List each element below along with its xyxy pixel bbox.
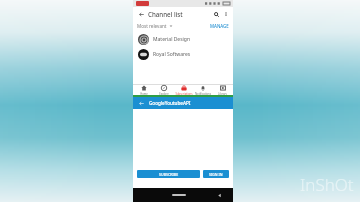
button[interactable]: SIGN IN bbox=[203, 170, 229, 178]
button[interactable]: Home bbox=[134, 85, 153, 95]
button[interactable]: Back bbox=[136, 9, 146, 19]
button[interactable]: Royal Softwares bbox=[133, 47, 233, 62]
staticText: Library bbox=[218, 92, 227, 95]
button[interactable]: Navigate up bbox=[137, 99, 146, 108]
staticText: GoogleYoutubeAPI bbox=[149, 100, 191, 106]
button[interactable]: Explore bbox=[154, 85, 173, 95]
staticText: Home bbox=[140, 92, 148, 95]
button[interactable]: More options bbox=[221, 9, 230, 18]
button[interactable]: Most relevant bbox=[137, 23, 173, 29]
button[interactable]: Subscriptions bbox=[174, 85, 193, 95]
staticText: Notifications bbox=[195, 92, 211, 95]
button[interactable]: Search bbox=[211, 9, 221, 19]
staticText: Royal Softwares bbox=[153, 51, 191, 58]
button[interactable]: SUBSCRIBE bbox=[137, 170, 200, 178]
button[interactable]: Back bbox=[216, 192, 223, 199]
button[interactable]: Notifications bbox=[193, 85, 212, 95]
staticText: SIGN IN bbox=[209, 172, 223, 177]
button[interactable]: MANAGE bbox=[210, 23, 229, 29]
button[interactable]: Home bbox=[172, 194, 186, 196]
staticText: Material Design bbox=[153, 36, 191, 43]
staticText: MANAGE bbox=[210, 23, 229, 29]
staticText: InShOt bbox=[300, 173, 354, 196]
staticText: SUBSCRIBE bbox=[159, 172, 179, 177]
staticText: Subscriptions bbox=[175, 92, 193, 95]
button[interactable]: Material Design bbox=[133, 32, 233, 47]
staticText: Explore bbox=[159, 92, 169, 95]
staticText: Channel list bbox=[148, 10, 183, 18]
button[interactable]: Library bbox=[213, 85, 232, 95]
staticText: Most relevant bbox=[137, 23, 167, 29]
